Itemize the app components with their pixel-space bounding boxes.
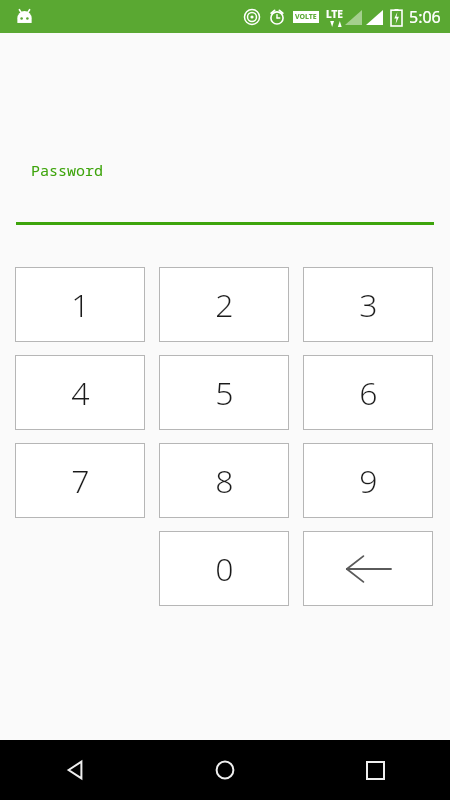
- button[interactable]: Home: [150, 740, 300, 800]
- staticText: 9: [359, 459, 378, 503]
- staticText: 8: [215, 459, 234, 503]
- button[interactable]: 5: [159, 355, 289, 430]
- staticText: 4: [71, 371, 90, 415]
- staticText: VOLTE: [295, 12, 317, 22]
- staticText: 2: [215, 283, 234, 327]
- button[interactable]: 6: [303, 355, 433, 430]
- staticText: 1: [71, 283, 90, 327]
- staticText: 3: [359, 283, 378, 327]
- staticText: 0: [215, 547, 234, 591]
- staticText: LTE: [326, 7, 343, 21]
- button[interactable]: 7: [15, 443, 145, 518]
- staticText: 6: [359, 371, 378, 415]
- staticText: 5:06: [409, 6, 441, 28]
- button[interactable]: 4: [15, 355, 145, 430]
- button[interactable]: 0: [159, 531, 289, 606]
- button[interactable]: 8: [159, 443, 289, 518]
- button[interactable]: Recent apps: [300, 740, 450, 800]
- button[interactable]: Back: [0, 740, 150, 800]
- staticText: Password: [31, 160, 104, 180]
- button[interactable]: 3: [303, 267, 433, 342]
- staticText: 5: [215, 371, 234, 415]
- button[interactable]: 9: [303, 443, 433, 518]
- staticText: 7: [71, 459, 90, 503]
- button[interactable]: Backspace: [303, 531, 433, 606]
- button[interactable]: 1: [15, 267, 145, 342]
- button[interactable]: 2: [159, 267, 289, 342]
